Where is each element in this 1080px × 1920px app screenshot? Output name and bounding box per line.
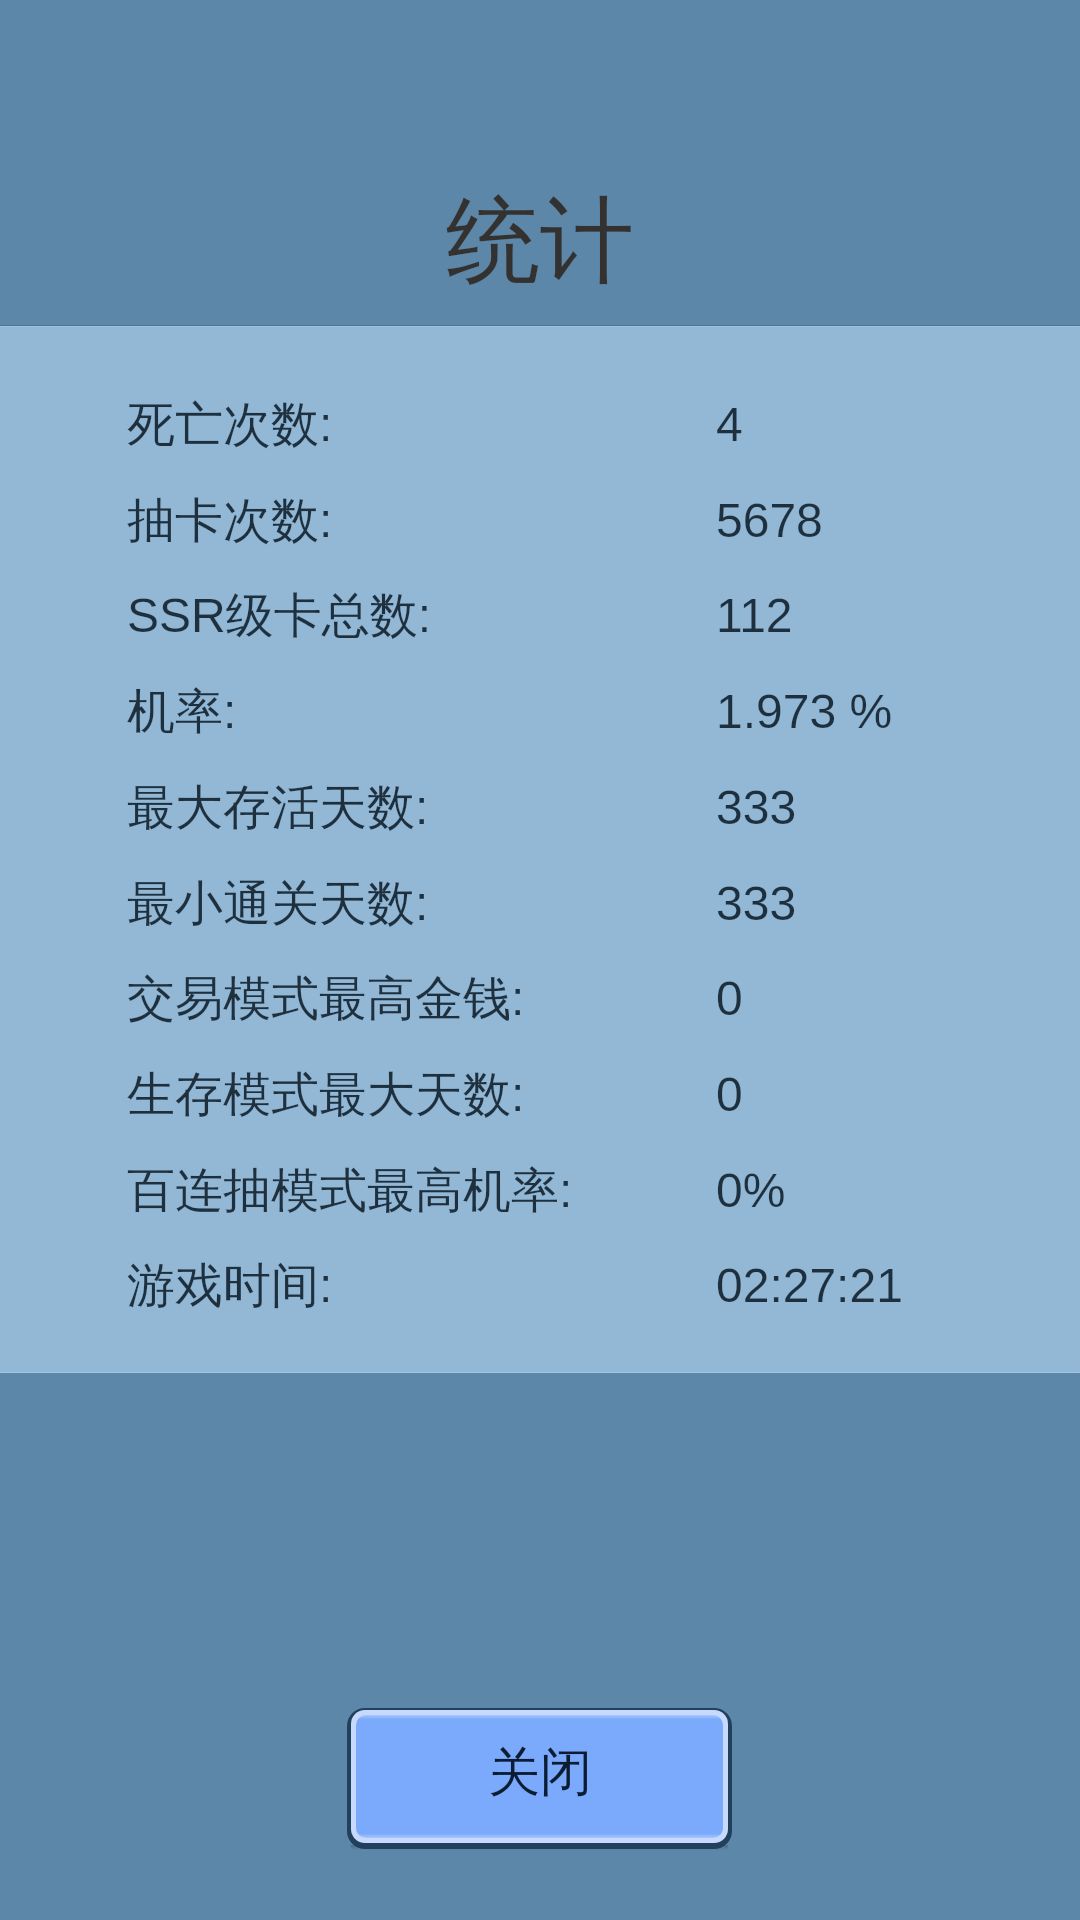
- staticText: 机率:: [127, 682, 237, 742]
- staticText: 最大存活天数:: [127, 778, 429, 838]
- staticText: 生存模式最大天数:: [127, 1065, 525, 1125]
- staticText: 112: [716, 589, 793, 643]
- staticText: 0: [716, 972, 743, 1026]
- staticText: SSR级卡总数:: [127, 586, 432, 646]
- staticText: 333: [716, 781, 797, 835]
- staticText: 抽卡次数:: [127, 491, 333, 551]
- staticText: 最小通关天数:: [127, 874, 429, 934]
- staticText: 333: [716, 877, 797, 931]
- staticText: 百连抽模式最高机率:: [127, 1161, 573, 1221]
- staticText: 交易模式最高金钱:: [127, 969, 525, 1029]
- staticText: 0: [716, 1068, 743, 1122]
- staticText: 0%: [716, 1164, 786, 1218]
- staticText: 1.973 %: [716, 685, 893, 739]
- staticText: 4: [716, 398, 743, 452]
- staticText: 死亡次数:: [127, 395, 333, 455]
- staticText: 游戏时间:: [127, 1256, 333, 1316]
- staticText: 02:27:21: [716, 1259, 903, 1313]
- button[interactable]: 关闭: [347, 1708, 732, 1849]
- staticText: 关闭: [488, 1740, 592, 1806]
- staticText: 统计: [0, 182, 1080, 300]
- staticText: 5678: [716, 494, 823, 548]
